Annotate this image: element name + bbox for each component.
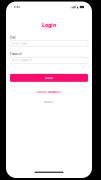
staticText: Email <box>10 36 16 39</box>
button[interactable]: Enter email... <box>10 40 88 47</box>
staticText: Enter email... <box>12 42 30 45</box>
staticText: SIGNUP <box>44 100 54 104</box>
staticText: 9:41 <box>14 5 21 9</box>
staticText: Password <box>10 52 22 56</box>
button[interactable]: LOGIN <box>6 74 92 82</box>
button[interactable]: FORGOT PASSWORD <box>6 90 92 93</box>
staticText: ▲ <box>77 5 79 8</box>
staticText: Enter password <box>12 58 32 62</box>
staticText: Login <box>42 21 56 29</box>
button[interactable]: SIGNUP <box>6 100 92 103</box>
staticText: FORGOT PASSWORD <box>37 90 61 94</box>
staticText: LOGIN <box>45 76 53 80</box>
button[interactable]: Enter password <box>10 57 88 63</box>
